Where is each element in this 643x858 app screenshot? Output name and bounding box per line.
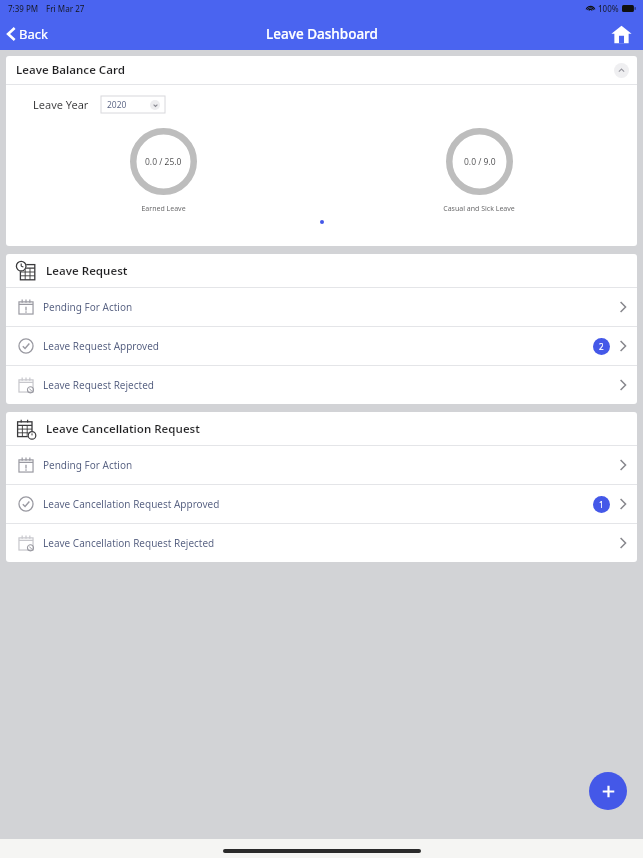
button[interactable]: Home xyxy=(605,18,637,50)
staticText: 1 xyxy=(599,499,604,510)
staticText: 2 xyxy=(599,341,604,352)
button[interactable]: Pending For Action xyxy=(6,446,637,484)
staticText: Leave Request Approved xyxy=(43,339,159,353)
staticText: Earned Leave xyxy=(141,204,186,214)
button[interactable]: Leave Cancellation Request Rejected xyxy=(6,524,637,562)
staticText: Leave Balance Card xyxy=(16,62,125,78)
button[interactable]: Leave Request xyxy=(6,254,637,287)
button[interactable]: Collapse xyxy=(614,63,629,78)
button[interactable]: Add leave request xyxy=(589,772,627,810)
staticText: 0.0 / 9.0 xyxy=(464,156,496,168)
staticText: Pending For Action xyxy=(43,458,133,472)
button[interactable]: 2020 xyxy=(101,96,165,113)
staticText: 2020 xyxy=(107,99,127,111)
staticText: Back xyxy=(19,25,48,43)
staticText: Leave Request xyxy=(46,263,128,279)
staticText: Pending For Action xyxy=(43,300,133,314)
staticText: Leave Dashboard xyxy=(266,25,378,43)
button[interactable]: Leave Cancellation Request xyxy=(6,412,637,445)
staticText: Leave Cancellation Request xyxy=(46,421,200,437)
staticText: 100% xyxy=(598,3,619,14)
button[interactable]: Pending For Action xyxy=(6,288,637,326)
button[interactable]: Leave Cancellation Request Approved xyxy=(6,485,637,523)
staticText: Leave Cancellation Request Approved xyxy=(43,497,220,511)
button[interactable]: Leave Request Rejected xyxy=(6,366,637,404)
staticText: 0.0 / 25.0 xyxy=(145,156,182,168)
staticText: Leave Cancellation Request Rejected xyxy=(43,536,215,550)
staticText: Casual and Sick Leave xyxy=(443,204,515,214)
button[interactable]: Leave Request Approved xyxy=(6,327,637,365)
button[interactable]: Leave Balance Card xyxy=(6,56,637,84)
staticText: Fri Mar 27 xyxy=(46,3,85,14)
staticText: Leave Request Rejected xyxy=(43,378,154,392)
staticText: Leave Year xyxy=(33,97,89,112)
staticText: 7:39 PM xyxy=(8,3,39,14)
button[interactable]: Back xyxy=(4,21,51,47)
